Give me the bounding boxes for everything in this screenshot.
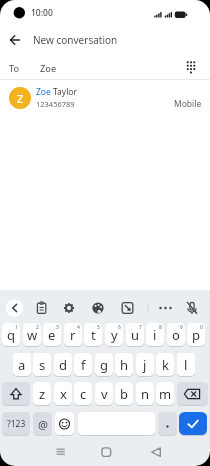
button[interactable] [119,299,136,316]
button[interactable] [50,442,71,462]
staticText: v [101,385,108,403]
staticText: a [18,356,26,374]
staticText: e [48,326,56,344]
staticText: 123456789 [36,99,75,109]
button[interactable]: b [115,382,133,406]
staticText: h [120,356,129,374]
staticText: l [184,356,188,374]
button[interactable] [179,412,207,436]
button[interactable]: q [2,323,20,347]
staticText: z [39,385,46,403]
staticText: d [59,356,67,374]
button[interactable] [33,299,50,316]
staticText: 6 [118,324,121,331]
button[interactable]: h [115,353,133,377]
button[interactable] [61,299,78,316]
button[interactable]: m [156,382,174,406]
button[interactable]: a [13,353,31,377]
staticText: q [7,326,15,344]
staticText: b [120,385,128,403]
button[interactable] [5,298,24,317]
button[interactable]: d [54,353,72,377]
staticText: r [70,326,76,344]
button[interactable] [2,382,30,406]
button[interactable]: k [156,353,174,377]
button[interactable]: n [136,382,154,406]
staticText: 7 [139,324,142,331]
staticText: 8 [159,324,162,331]
button[interactable]: u [126,323,144,347]
button[interactable]: s [33,353,51,377]
button[interactable] [96,442,117,462]
staticText: Z [17,91,24,106]
staticText: Zoe Taylor [36,86,78,98]
button[interactable]: l [177,353,195,377]
staticText: 9 [180,324,183,331]
staticText: f [81,356,86,374]
staticText: c [80,385,87,403]
button[interactable]: g [95,353,113,377]
button[interactable]: j [136,353,154,377]
button[interactable] [184,299,201,316]
button[interactable]: ?123 [2,412,30,436]
staticText: j [143,356,147,374]
staticText: 3 [56,324,59,331]
button[interactable] [90,299,107,316]
button[interactable]: w [23,323,41,347]
staticText: @ [38,417,48,432]
button[interactable]: f [74,353,92,377]
button[interactable]: t [84,323,102,347]
staticText: u [131,326,140,344]
staticText: s [39,356,46,374]
button[interactable] [6,31,24,49]
button[interactable] [78,412,155,436]
button[interactable]: i [146,323,164,347]
button[interactable] [158,412,177,436]
button[interactable]: r [64,323,82,347]
staticText: 2 [36,324,39,331]
staticText: ?123 [7,418,26,430]
button[interactable]: x [54,382,72,406]
staticText: m [159,385,172,403]
button[interactable]: o [167,323,185,347]
button[interactable] [182,58,200,76]
button[interactable]: v [95,382,113,406]
staticText: New conversation [33,33,118,47]
button[interactable] [145,442,166,462]
button[interactable] [55,412,74,436]
button[interactable]: c [74,382,92,406]
staticText: y [111,326,118,344]
button[interactable]: y [105,323,123,347]
button[interactable]: e [43,323,61,347]
staticText: Zoe [40,62,57,75]
staticText: 10:00 [31,7,53,19]
button[interactable]: z [33,382,51,406]
button[interactable] [157,299,174,316]
staticText: Mobile [174,98,202,110]
staticText: i [153,326,157,344]
staticText: 4 [77,324,80,331]
button[interactable] [177,382,208,406]
staticText: n [141,385,150,403]
staticText: o [172,326,180,344]
staticText: w [27,326,38,344]
staticText: k [162,356,169,374]
staticText: p [192,326,200,344]
staticText: 5 [97,324,100,331]
staticText: x [60,385,67,403]
button[interactable]: p [187,323,205,347]
staticText: g [100,356,108,374]
staticText: To [9,62,20,75]
staticText: 0 [200,324,203,331]
staticText: 1 [15,324,18,331]
staticText: t [91,326,96,344]
button[interactable] [0,83,210,114]
button[interactable]: @ [33,412,52,436]
